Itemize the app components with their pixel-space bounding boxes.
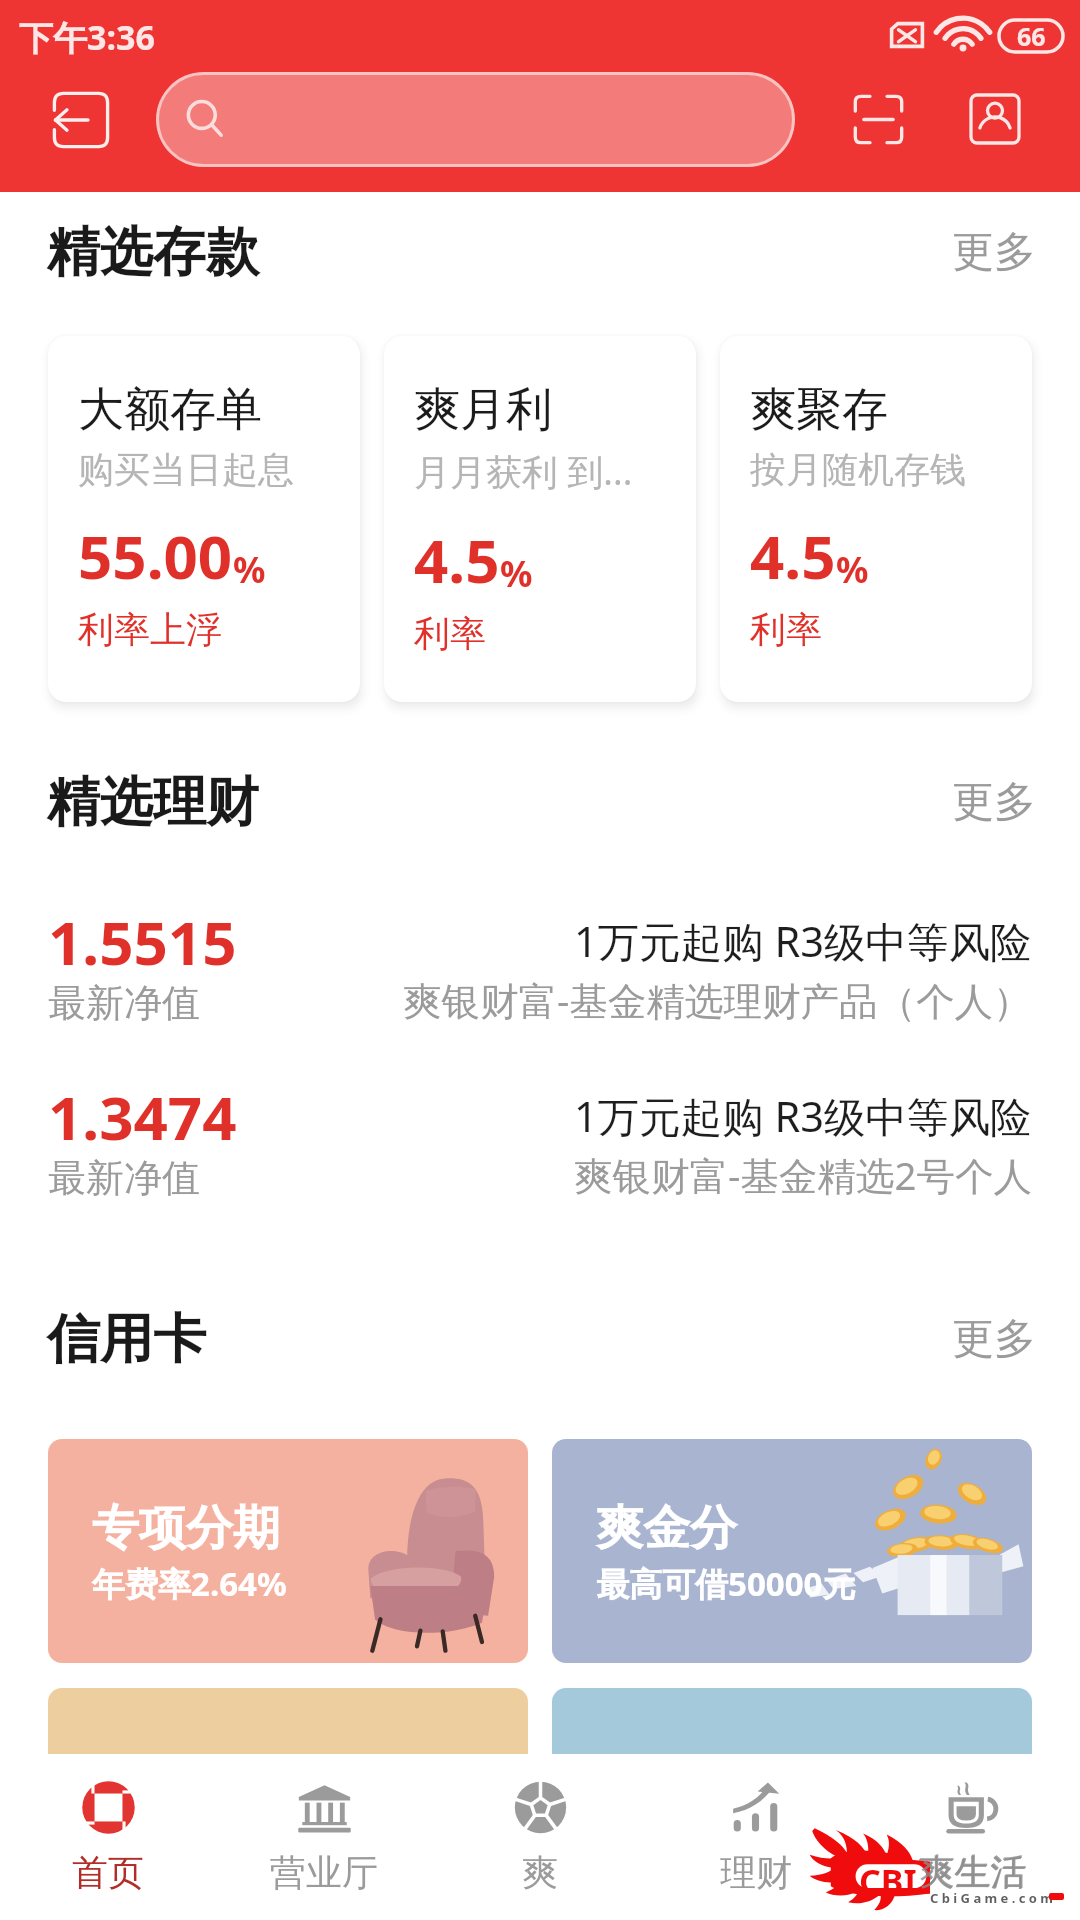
staticText: 专项分期 [92,1499,280,1558]
button[interactable]: 理财 [648,1754,864,1920]
staticText: 爽银财富-基金精选2号个人 [574,1149,1032,1202]
button[interactable]: Profile [965,89,1025,149]
staticText: 月月获利 到... [414,447,633,496]
staticText: 爽银财富-基金精选理财产品（个人） [403,974,1032,1027]
staticText: 最高可借50000元 [596,1561,856,1606]
button[interactable]: 更多 [952,226,1036,279]
button[interactable]: 营业厅 [216,1754,432,1920]
button[interactable]: 1.5515 [48,901,1032,1076]
staticText: 更多 [952,776,1036,829]
staticText: CBI [859,1858,917,1904]
button[interactable]: Scan [848,89,909,150]
staticText: 爽月利 [414,381,552,439]
staticText: 1万元起购 R3级中等风险 [574,1088,1032,1145]
staticText: 按月随机存钱 [750,447,966,492]
staticText: 爽金分 [596,1499,737,1558]
staticText: 大额存单 [78,381,262,439]
staticText: 最新净值 [48,979,200,1027]
staticText: 更多 [952,226,1036,279]
staticText: 利率 [750,607,822,652]
staticText: 更多 [952,1313,1036,1366]
staticText: 利率 [414,611,486,656]
staticText: 1.3474 [48,1076,237,1158]
staticText: 爽聚存 [750,381,888,439]
staticText: 55.00 [78,515,233,597]
staticText: 首页 [72,1850,144,1895]
staticText: % [233,545,266,594]
button[interactable]: 爽聚存 [720,336,1032,702]
staticText: 营业厅 [270,1850,378,1895]
button[interactable]: 爽 [432,1754,648,1920]
button[interactable]: 专项分期 [48,1439,528,1663]
staticText: 下午3:36 [19,14,155,60]
staticText: C b i G a m e . c o m [930,1889,1054,1907]
staticText: 爽生活 [918,1850,1026,1895]
button[interactable]: 更多 [952,1313,1036,1366]
button[interactable]: 爽生活 [864,1754,1080,1920]
button[interactable]: Search [156,72,795,167]
staticText: 4.5 [750,515,836,597]
staticText: 最新净值 [48,1154,200,1202]
staticText: % [500,549,533,598]
staticText: 爽 [522,1850,558,1895]
staticText: 理财 [720,1850,792,1895]
button[interactable] [552,1688,1032,1912]
staticText: 信用卡 [47,1306,206,1373]
staticText: 购买当日起息 [78,447,294,492]
staticText: 精选理财 [47,769,259,836]
button[interactable]: 首页 [0,1754,216,1920]
staticText: 66 [1017,19,1046,53]
staticText: 精选存款 [47,219,259,286]
staticText: 年费率2.64% [92,1561,287,1606]
button[interactable]: 大额存单 [48,336,360,702]
staticText: 1万元起购 R3级中等风险 [574,913,1032,970]
button[interactable]: 爽月利 [384,336,696,702]
staticText: 4.5 [414,519,500,601]
button[interactable]: 更多 [952,776,1036,829]
staticText: % [836,545,869,594]
button[interactable]: Back [46,85,116,155]
staticText: 爽生活 [919,1849,1027,1894]
staticText: 利率上浮 [78,607,222,652]
button[interactable] [48,1688,528,1912]
button[interactable]: 爽金分 [552,1439,1032,1663]
button[interactable]: 1.3474 [48,1076,1032,1251]
staticText: 1.5515 [48,901,237,983]
